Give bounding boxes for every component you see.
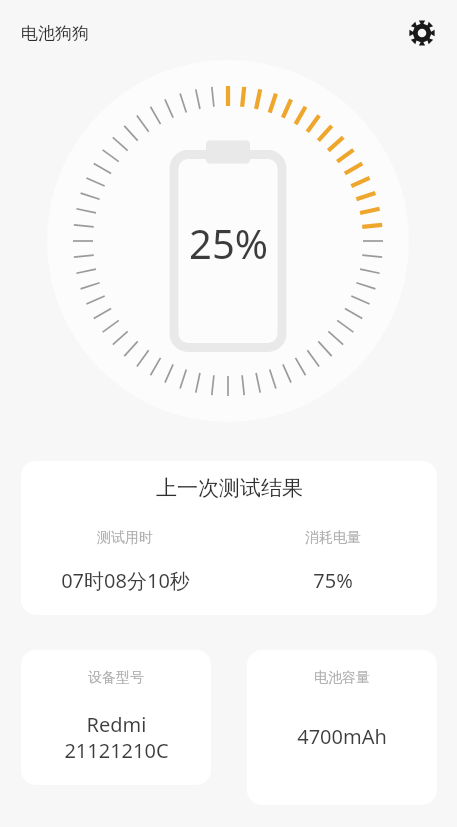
staticText: 4700mAh: [297, 723, 387, 750]
staticText: 75%: [313, 567, 353, 594]
button[interactable]: 电池狗狗: [21, 23, 89, 44]
staticText: 上一次测试结果: [156, 475, 303, 501]
button[interactable]: 上一次测试结果: [21, 461, 437, 615]
button[interactable]: 设备型号: [21, 650, 211, 785]
staticText: 电池容量: [314, 669, 370, 687]
staticText: 电池狗狗: [21, 23, 89, 44]
button[interactable]: 电池容量: [247, 650, 437, 805]
staticText: Redmi 21121210C: [64, 711, 169, 764]
staticText: 25%: [189, 216, 268, 270]
staticText: 消耗电量: [305, 529, 361, 547]
button[interactable]: Settings: [400, 11, 444, 55]
staticText: 07时08分10秒: [61, 567, 190, 594]
staticText: 测试用时: [97, 529, 153, 547]
staticText: 设备型号: [88, 669, 144, 687]
